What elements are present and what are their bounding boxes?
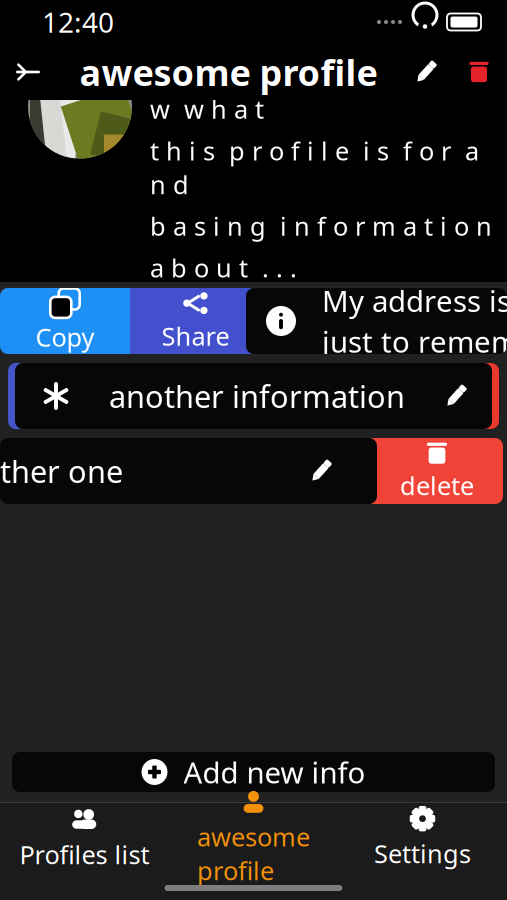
staticText: 12:40 xyxy=(42,3,114,41)
button[interactable]: Profiles list xyxy=(0,807,169,869)
staticText: nd another one xyxy=(0,451,123,491)
button[interactable]: nd another one xyxy=(0,438,377,504)
button[interactable]: Edit profile xyxy=(401,46,451,98)
button[interactable]: Delete profile xyxy=(451,46,507,98)
staticText: t h i s p r o f i l e i s f o r a n d xyxy=(150,134,479,201)
staticText: Copy xyxy=(35,320,94,354)
button[interactable]: Settings xyxy=(338,807,507,869)
button[interactable]: My address is .. xyxy=(246,288,507,354)
staticText: t h e d e s c r i p t i o n s h o w w h … xyxy=(150,59,492,126)
staticText: My address is .. xyxy=(322,281,507,320)
button[interactable]: awesome profile xyxy=(169,807,338,869)
staticText: Settings xyxy=(374,837,471,870)
staticText: another information xyxy=(109,376,405,416)
staticText: Infos xyxy=(116,296,189,335)
button[interactable]: Share xyxy=(130,288,261,354)
staticText: Files xyxy=(376,296,439,335)
button[interactable]: Copy xyxy=(0,288,130,354)
button[interactable]: Infos xyxy=(0,292,253,338)
button[interactable]: Add new info xyxy=(12,752,495,792)
staticText: just to rememb xyxy=(322,322,507,361)
staticText: Share xyxy=(161,319,229,353)
staticText: awesome profile xyxy=(79,47,377,96)
staticText: a b o u t . . . xyxy=(150,251,297,284)
staticText: b a s i n g i n f o r m a t i o n xyxy=(150,209,492,243)
staticText: Profiles list xyxy=(19,838,149,871)
staticText: delete xyxy=(400,469,474,502)
staticText: Add new info xyxy=(183,752,365,791)
button[interactable]: Back xyxy=(0,46,56,98)
button[interactable]: Files xyxy=(253,292,507,338)
staticText: awesome profile xyxy=(197,820,310,887)
button[interactable]: another information xyxy=(15,363,492,429)
button[interactable]: delete xyxy=(371,438,503,504)
